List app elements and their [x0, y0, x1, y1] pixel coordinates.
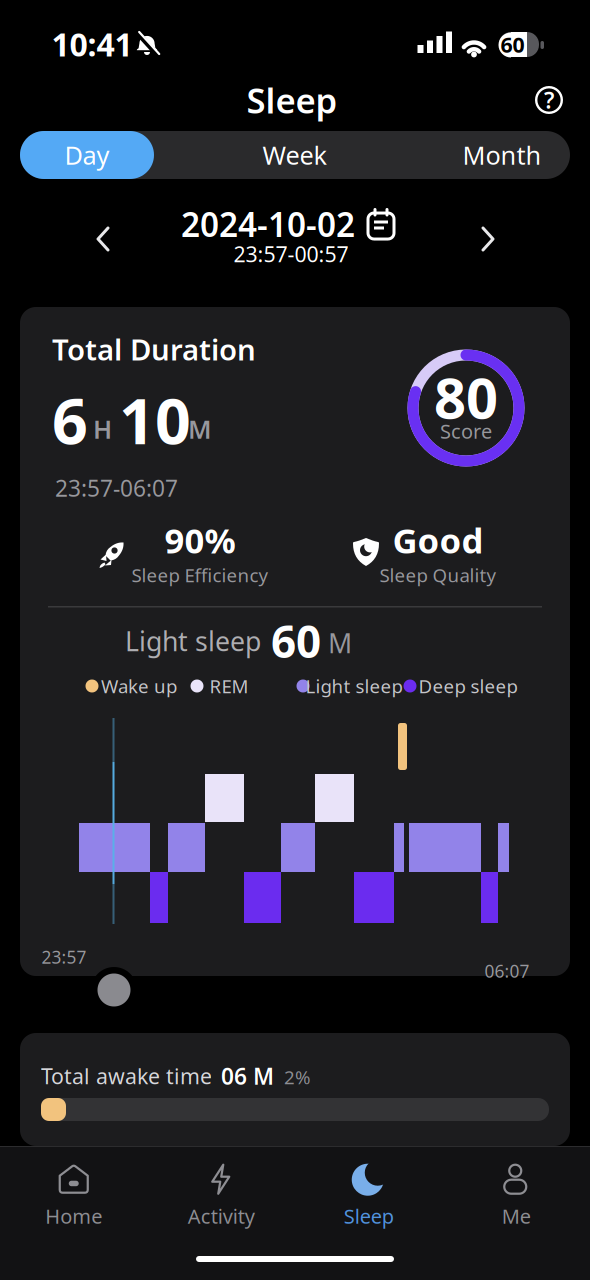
staticText: 90%	[164, 517, 235, 563]
staticText: 2024-10-02	[181, 202, 355, 246]
staticText: Me	[502, 1203, 531, 1229]
staticText: Good	[392, 517, 483, 563]
button[interactable]: Previous day	[82, 217, 126, 261]
staticText: 23:57-06:07	[55, 473, 178, 503]
staticText: 23:57-00:57	[233, 240, 348, 268]
button[interactable]: Next day	[465, 217, 509, 261]
staticText: Light sleep	[125, 623, 261, 659]
button[interactable]: 2024-10-02	[123, 203, 453, 267]
staticText: 23:57	[41, 945, 86, 968]
staticText: ?	[544, 85, 554, 115]
staticText: 80	[434, 360, 498, 434]
staticText: Home	[45, 1203, 102, 1229]
button[interactable]: Week	[205, 131, 385, 179]
staticText: REM	[209, 674, 248, 698]
staticText: Sleep	[246, 77, 337, 123]
button[interactable]: Day	[20, 131, 154, 179]
staticText: Sleep	[344, 1203, 394, 1229]
staticText: 60	[500, 30, 524, 59]
staticText: 6	[52, 378, 88, 462]
staticText: 06 M	[221, 1061, 274, 1091]
button[interactable]: Me	[442, 1158, 590, 1234]
button[interactable]: Home	[0, 1158, 147, 1234]
staticText: 2%	[284, 1065, 311, 1089]
button[interactable]: Help	[532, 83, 566, 117]
button[interactable]: Activity	[147, 1158, 295, 1234]
staticText: Total Duration	[52, 329, 256, 368]
button[interactable]: Month	[434, 131, 570, 179]
staticText: H	[93, 412, 112, 446]
staticText: Total awake time	[41, 1062, 212, 1090]
staticText: Wake up	[101, 674, 177, 698]
staticText: Light sleep	[305, 674, 402, 698]
staticText: Week	[262, 138, 327, 172]
staticText: 06:07	[484, 959, 529, 982]
staticText: 10:41	[51, 23, 132, 65]
staticText: 60	[271, 612, 321, 670]
staticText: Activity	[188, 1203, 255, 1229]
staticText: Sleep Efficiency	[131, 563, 268, 587]
staticText: Deep sleep	[418, 674, 517, 698]
button[interactable]: Sleep	[295, 1158, 442, 1234]
staticText: Sleep Quality	[379, 563, 496, 587]
staticText: M	[328, 625, 352, 661]
staticText: Month	[462, 138, 541, 172]
staticText: Day	[64, 138, 109, 172]
button[interactable]: Time cursor	[97, 973, 130, 1006]
staticText: 10	[119, 378, 191, 462]
staticText: M	[188, 412, 212, 446]
staticText: Score	[440, 418, 492, 444]
